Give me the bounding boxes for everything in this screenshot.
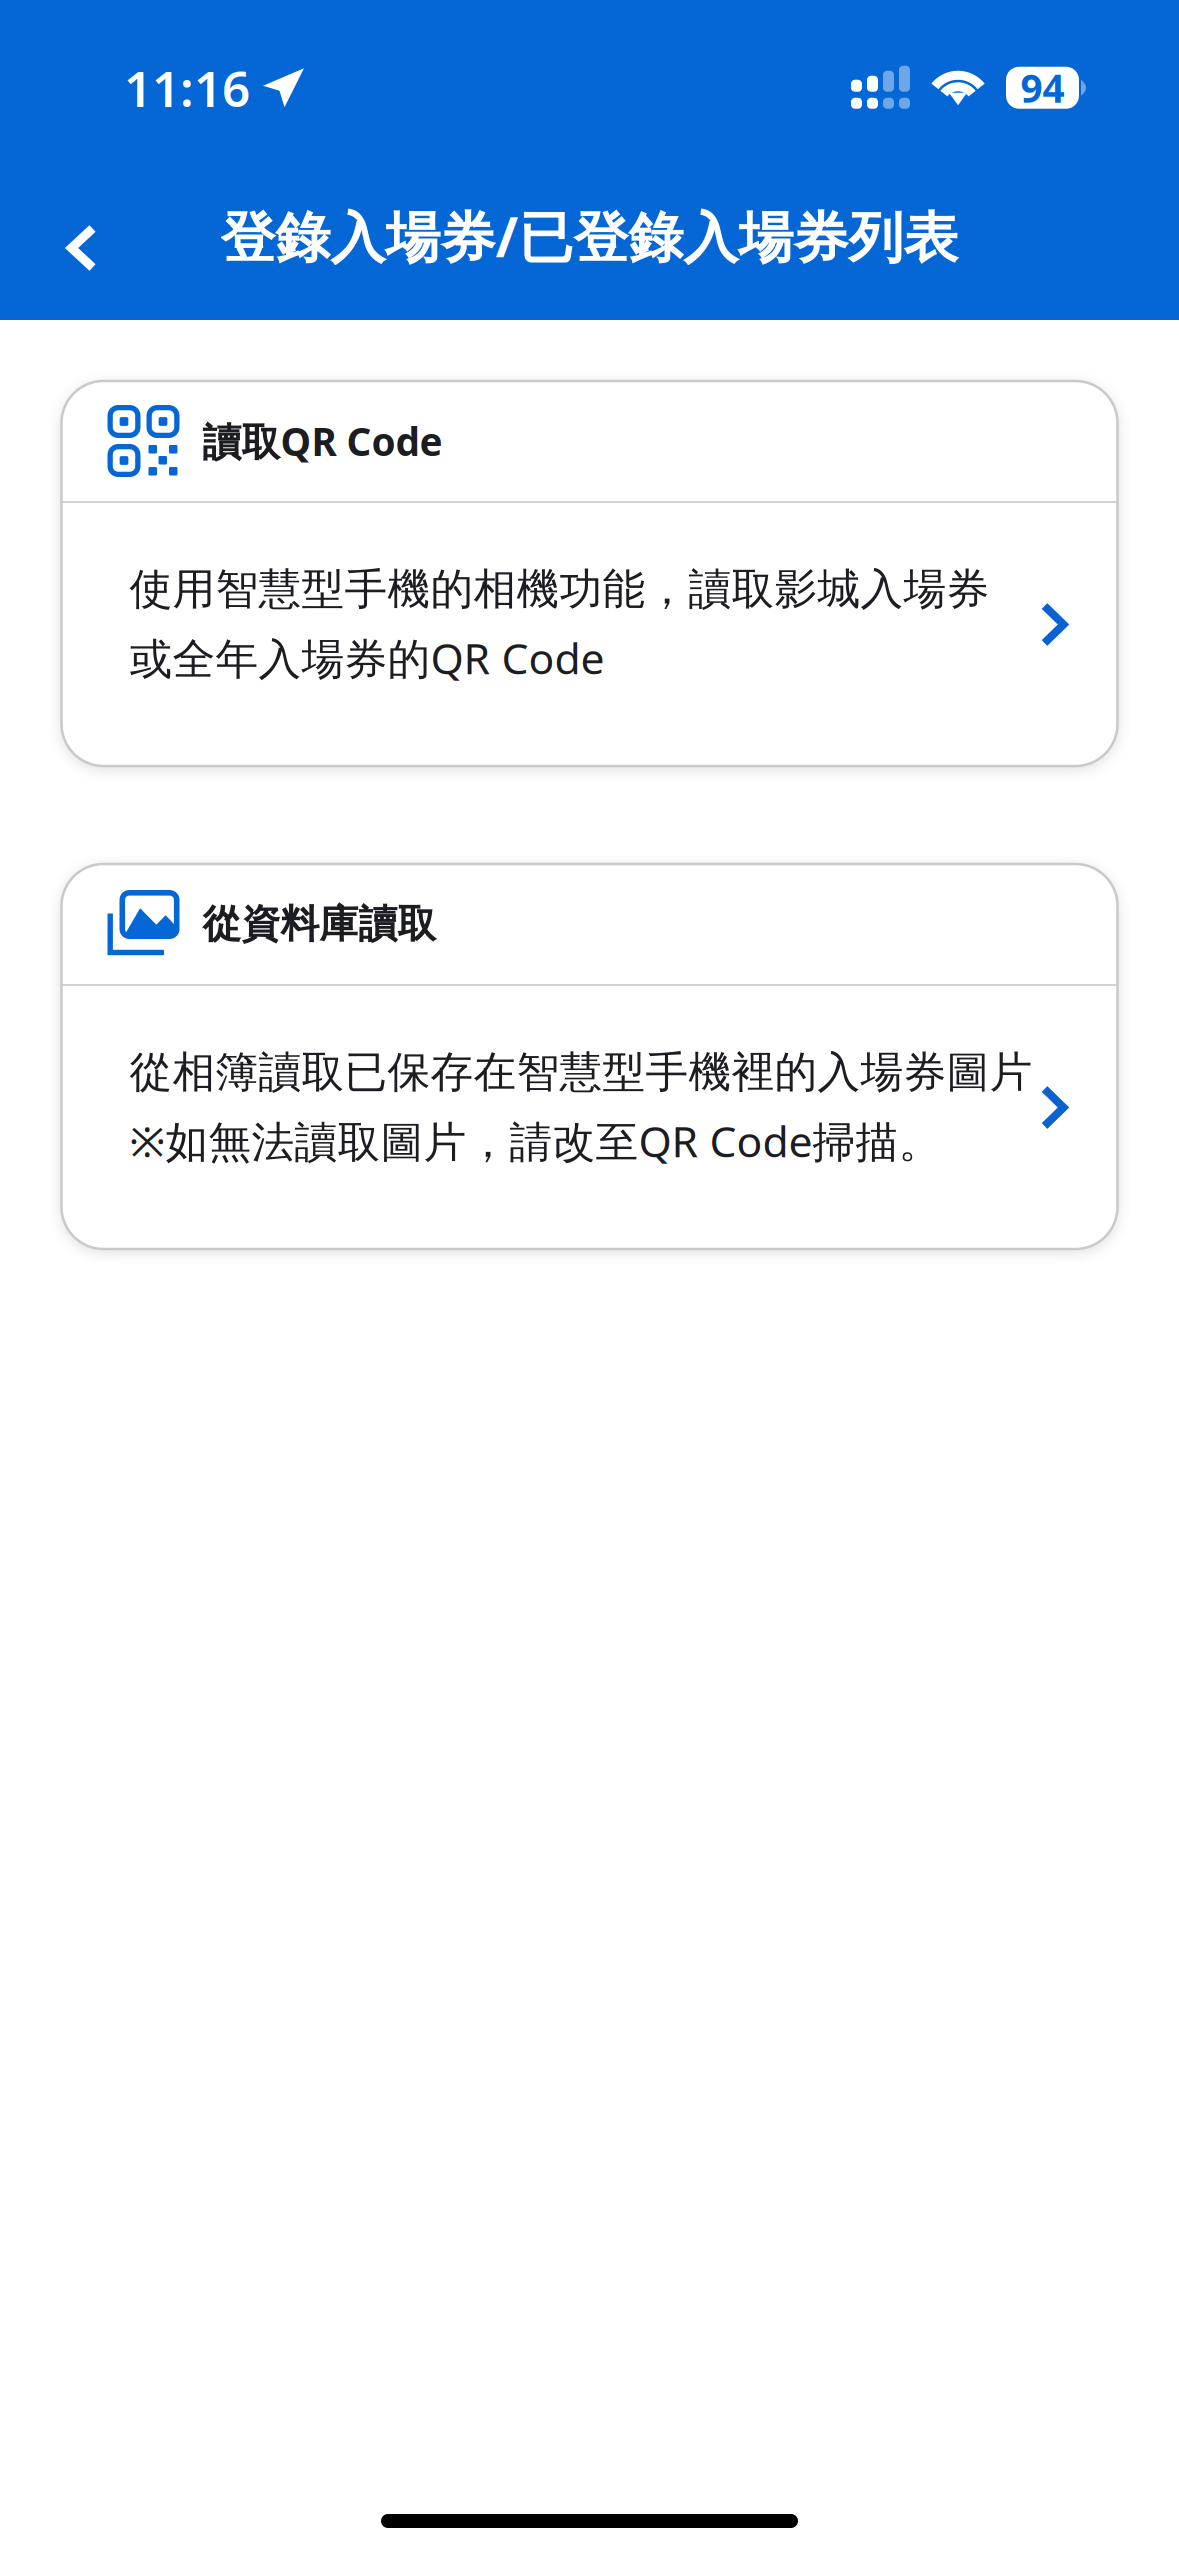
staticText: 11:16 (124, 55, 250, 120)
staticText: 登錄入場券/已登錄入場券列表 (220, 200, 958, 272)
button[interactable]: 從資料庫讀取 (61, 864, 1117, 1249)
staticText: 讀取QR Code (202, 415, 442, 467)
button[interactable]: 讀取QR Code (61, 381, 1117, 766)
staticText: 或全年入場券的QR Code (129, 629, 604, 686)
staticText: 94 (1020, 62, 1064, 113)
staticText: 從資料庫讀取 (202, 900, 436, 948)
staticText: 從相簿讀取已保存在智慧型手機裡的入場券圖片 (129, 1046, 1032, 1098)
button[interactable]: Back (23, 178, 141, 318)
staticText: ※如無法讀取圖片，請改至QR Code掃描。 (129, 1112, 941, 1169)
staticText: 使用智慧型手機的相機功能，讀取影城入場券 (129, 563, 989, 615)
